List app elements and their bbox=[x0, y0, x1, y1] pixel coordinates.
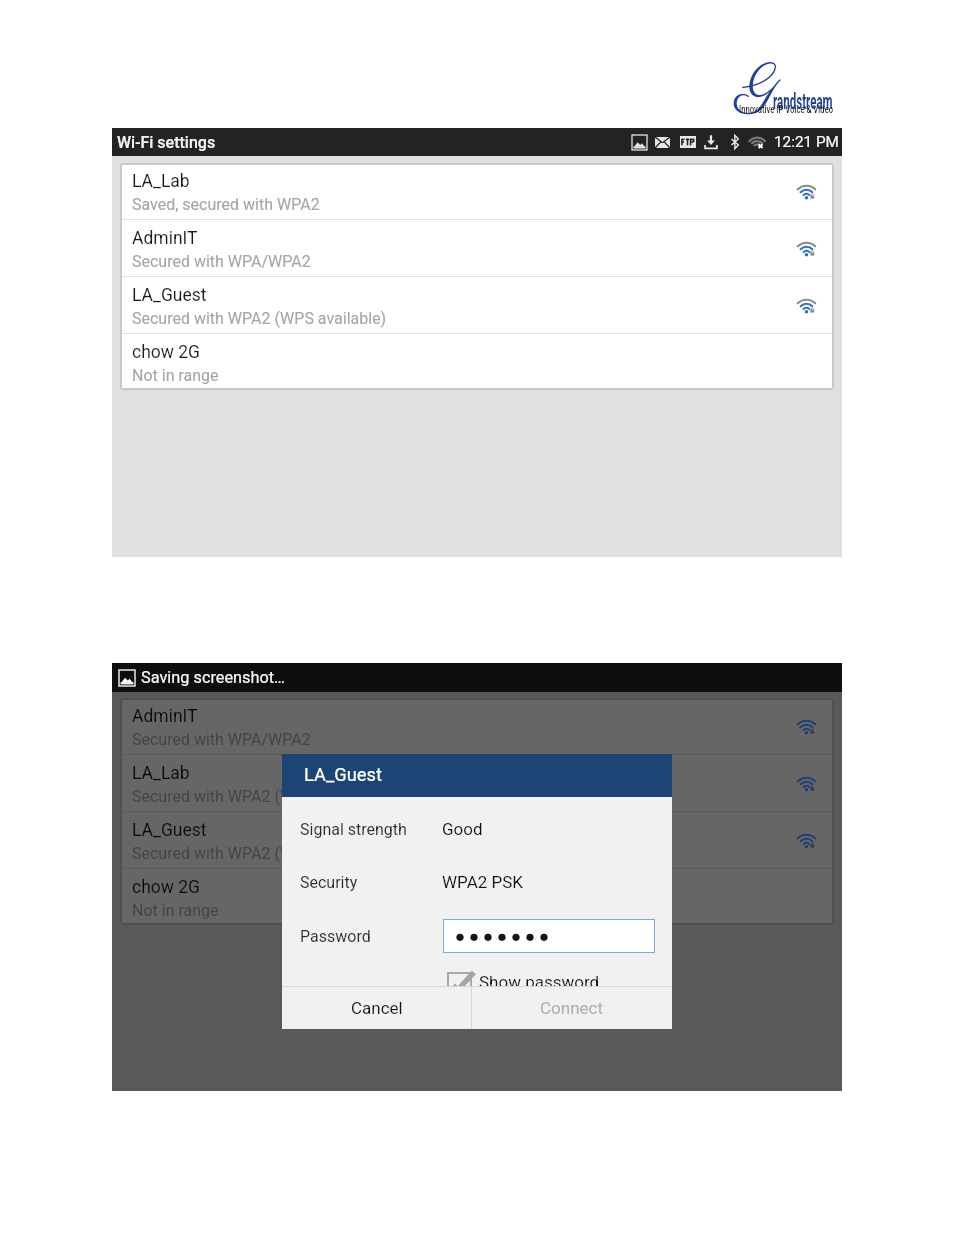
staticText: Good bbox=[442, 819, 483, 839]
staticText: Secured with WPA/WPA2 bbox=[132, 252, 311, 271]
staticText: chow 2G bbox=[132, 342, 201, 363]
staticText: Password bbox=[300, 927, 371, 946]
staticText: Not in range bbox=[132, 366, 219, 385]
staticText: Saved, secured with WPA2 bbox=[132, 195, 320, 214]
staticText: AdminIT bbox=[132, 228, 198, 249]
staticText: chow 2G bbox=[132, 877, 201, 898]
button[interactable]: AdminIT bbox=[120, 220, 834, 276]
staticText: Cancel bbox=[351, 998, 403, 1018]
staticText: 12:21 PM bbox=[774, 133, 839, 151]
button[interactable]: chow 2G bbox=[120, 869, 834, 925]
staticText: Secured with WPA/WPA2 bbox=[132, 730, 311, 749]
staticText: Secured with WPA2 (WPS available) bbox=[132, 787, 387, 806]
staticText: AdminIT bbox=[132, 706, 198, 727]
staticText: LA_Guest bbox=[132, 285, 207, 306]
staticText: randstream bbox=[773, 89, 833, 115]
staticText: Security bbox=[300, 873, 358, 892]
staticText: WPA2 PSK bbox=[442, 872, 524, 892]
staticText: G bbox=[738, 52, 778, 128]
staticText: Connect bbox=[540, 998, 604, 1018]
staticText: Secured with WPA2 (WPS available) bbox=[132, 844, 387, 863]
button[interactable]: Cancel bbox=[282, 987, 471, 1029]
staticText: LA_Guest bbox=[132, 820, 207, 841]
button[interactable]: LA_Lab bbox=[120, 755, 834, 811]
button[interactable]: Show password bbox=[448, 973, 600, 996]
staticText: LA_Guest bbox=[304, 764, 382, 785]
button[interactable]: AdminIT bbox=[120, 698, 834, 754]
button[interactable]: LA_Guest bbox=[120, 812, 834, 868]
button[interactable]: Connect bbox=[472, 987, 672, 1029]
staticText: Wi-Fi settings bbox=[117, 133, 216, 152]
staticText: Innovative IP Voice & Video bbox=[739, 103, 833, 116]
staticText: Secured with WPA2 (WPS available) bbox=[132, 309, 387, 328]
button[interactable]: chow 2G bbox=[120, 334, 834, 390]
button[interactable]: LA_Guest bbox=[120, 277, 834, 333]
staticText: LA_Lab bbox=[132, 171, 190, 192]
staticText: LA_Lab bbox=[132, 763, 190, 784]
button[interactable]: LA_Lab bbox=[120, 163, 834, 219]
staticText: Not in range bbox=[132, 901, 219, 920]
staticText: Saving screenshot… bbox=[141, 668, 285, 687]
staticText: Signal strength bbox=[300, 820, 407, 839]
staticText: Show password bbox=[479, 972, 600, 992]
